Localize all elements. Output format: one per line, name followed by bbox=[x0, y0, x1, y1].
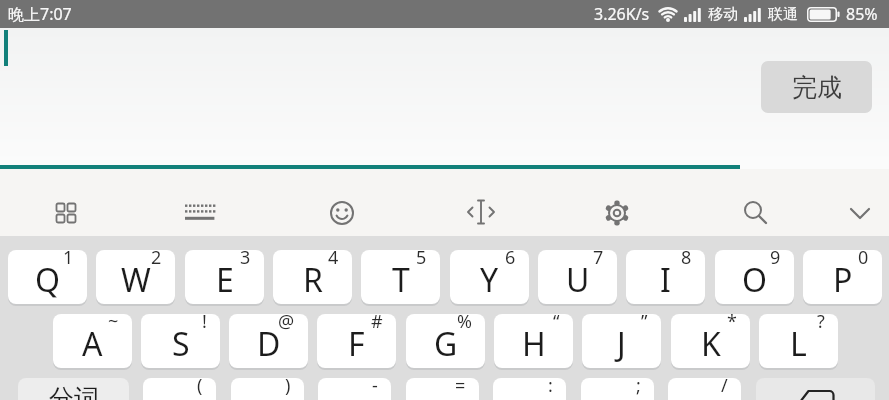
staticText: 5 bbox=[416, 250, 427, 270]
button[interactable] bbox=[176, 184, 224, 232]
button[interactable]: H bbox=[494, 314, 573, 368]
staticText: I bbox=[660, 258, 671, 302]
staticText: T bbox=[392, 258, 410, 302]
staticText: - bbox=[372, 378, 378, 398]
staticText: 3 bbox=[240, 250, 251, 270]
staticText: 2 bbox=[151, 250, 162, 270]
staticText: J bbox=[617, 322, 626, 366]
button[interactable]: K bbox=[671, 314, 750, 368]
staticText: K bbox=[701, 322, 721, 366]
staticText: ! bbox=[202, 314, 207, 334]
staticText: 移动 bbox=[708, 5, 738, 24]
staticText: 6 bbox=[505, 250, 516, 270]
button[interactable]: L bbox=[759, 314, 838, 368]
staticText: 9 bbox=[770, 250, 781, 270]
button[interactable]: W bbox=[96, 250, 175, 304]
staticText: ? bbox=[817, 314, 825, 334]
staticText: 3.26K/s bbox=[594, 3, 650, 25]
button[interactable] bbox=[731, 184, 779, 232]
staticText: 8 bbox=[681, 250, 692, 270]
staticText: ; bbox=[636, 378, 641, 398]
staticText: @ bbox=[278, 314, 295, 334]
button[interactable] bbox=[593, 184, 641, 232]
staticText: Q bbox=[35, 258, 60, 302]
button[interactable]: X bbox=[231, 378, 304, 400]
button[interactable] bbox=[836, 184, 884, 232]
staticText: % bbox=[457, 314, 472, 334]
button[interactable]: F bbox=[317, 314, 396, 368]
staticText: O bbox=[742, 258, 767, 302]
button[interactable]: C bbox=[318, 378, 391, 400]
staticText: 0 bbox=[858, 250, 869, 270]
button[interactable] bbox=[42, 184, 90, 232]
button[interactable]: D bbox=[229, 314, 308, 368]
button[interactable] bbox=[756, 378, 875, 400]
staticText: 85% bbox=[846, 3, 878, 25]
button[interactable]: I bbox=[626, 250, 705, 304]
staticText: P bbox=[833, 258, 853, 302]
staticText: # bbox=[371, 314, 383, 334]
staticText: 晚上7:07 bbox=[8, 3, 72, 25]
staticText: E bbox=[216, 258, 234, 302]
staticText: G bbox=[434, 322, 458, 366]
staticText: : bbox=[548, 378, 553, 398]
staticText: ~ bbox=[108, 314, 119, 334]
button[interactable]: E bbox=[185, 250, 264, 304]
button[interactable]: R bbox=[273, 250, 352, 304]
button[interactable]: U bbox=[538, 250, 617, 304]
staticText: / bbox=[721, 378, 728, 398]
button[interactable]: V bbox=[406, 378, 479, 400]
staticText: U bbox=[566, 258, 590, 302]
staticText: “ bbox=[553, 314, 560, 334]
button[interactable]: N bbox=[581, 378, 654, 400]
staticText: 完成 bbox=[792, 72, 842, 103]
staticText: A bbox=[82, 322, 103, 366]
button[interactable]: O bbox=[715, 250, 794, 304]
button[interactable]: A bbox=[53, 314, 132, 368]
button[interactable]: Y bbox=[450, 250, 529, 304]
staticText: 4 bbox=[328, 250, 339, 270]
staticText: ) bbox=[285, 378, 291, 398]
button[interactable]: Z bbox=[143, 378, 216, 400]
staticText: 1 bbox=[63, 250, 74, 270]
button[interactable]: P bbox=[803, 250, 882, 304]
staticText: 7 bbox=[593, 250, 604, 270]
staticText: 联通 bbox=[768, 5, 798, 24]
staticText: 分词 bbox=[49, 383, 99, 400]
button[interactable] bbox=[318, 184, 366, 232]
button[interactable]: B bbox=[493, 378, 566, 400]
button[interactable]: G bbox=[406, 314, 485, 368]
staticText: H bbox=[522, 322, 546, 366]
staticText: R bbox=[303, 258, 323, 302]
staticText: Y bbox=[480, 258, 499, 302]
staticText: W bbox=[121, 258, 151, 302]
button[interactable]: 完成 bbox=[761, 61, 872, 113]
button[interactable]: M bbox=[668, 378, 741, 400]
staticText: F bbox=[348, 322, 365, 366]
staticText: S bbox=[172, 322, 190, 366]
button[interactable]: J bbox=[582, 314, 661, 368]
button[interactable]: 分词 bbox=[18, 378, 129, 400]
staticText: = bbox=[455, 378, 466, 398]
staticText: L bbox=[790, 322, 807, 366]
staticText: D bbox=[257, 322, 281, 366]
staticText: ( bbox=[197, 378, 203, 398]
staticText: ” bbox=[641, 314, 648, 334]
button[interactable]: T bbox=[361, 250, 440, 304]
button[interactable] bbox=[457, 184, 505, 232]
button[interactable]: Q bbox=[8, 250, 87, 304]
staticText: * bbox=[727, 314, 737, 334]
button[interactable]: S bbox=[141, 314, 220, 368]
